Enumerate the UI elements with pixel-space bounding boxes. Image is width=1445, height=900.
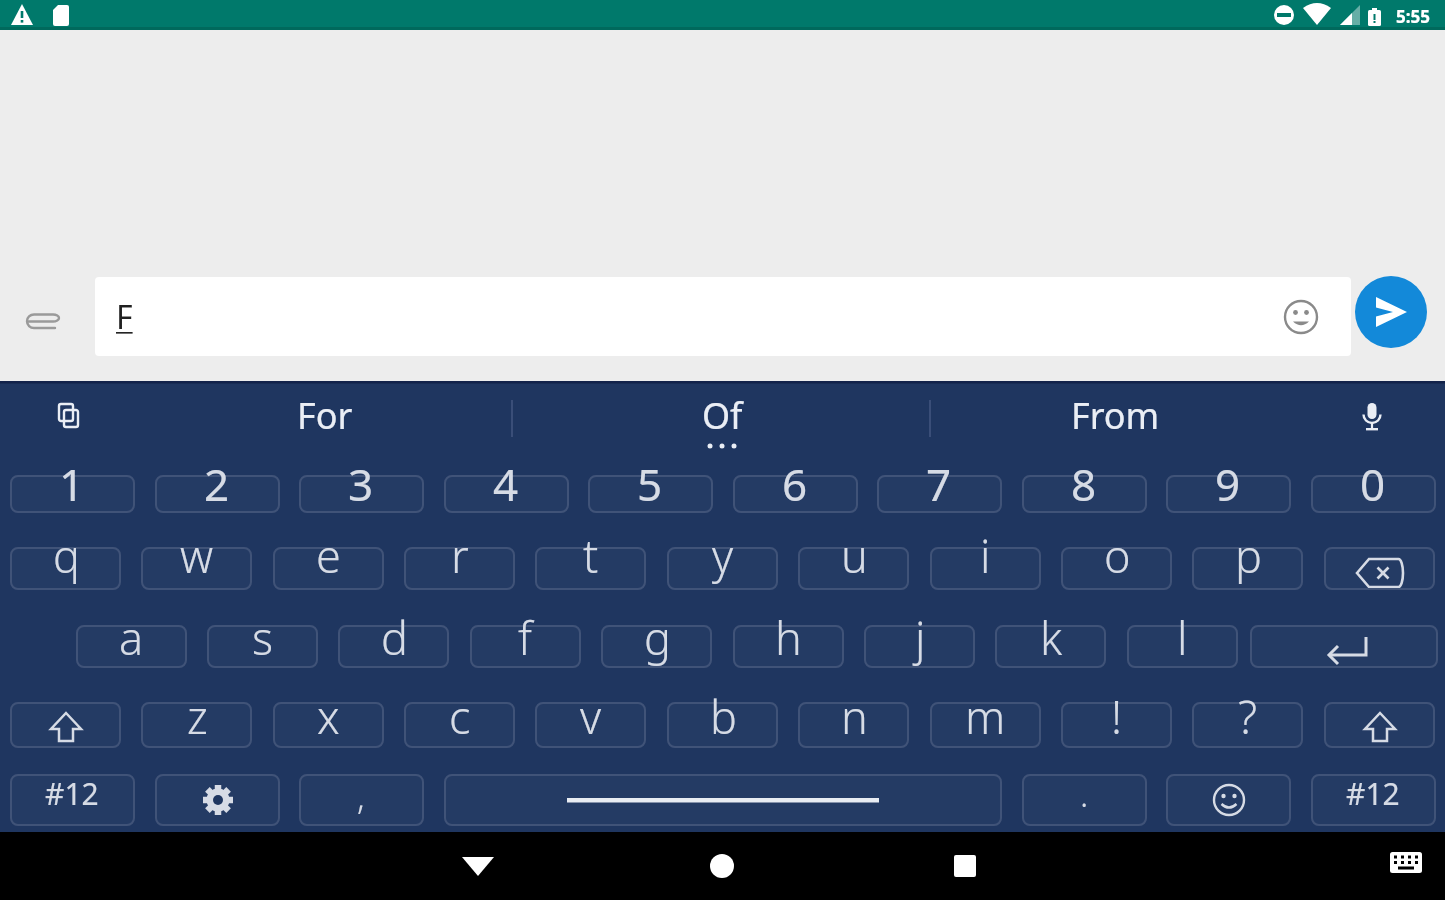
staticText: h	[775, 607, 802, 668]
button[interactable]	[798, 702, 909, 748]
staticText: ?	[1238, 686, 1258, 747]
staticText: For	[297, 391, 353, 440]
button[interactable]	[1192, 702, 1303, 748]
button[interactable]: F	[95, 277, 1351, 356]
button[interactable]	[1022, 774, 1147, 826]
button[interactable]	[733, 625, 844, 668]
staticText: #12	[1346, 773, 1400, 814]
button[interactable]	[1324, 547, 1435, 590]
button[interactable]	[995, 625, 1106, 668]
staticText: g	[644, 607, 671, 668]
staticText: u	[841, 525, 868, 586]
staticText: r	[451, 525, 469, 586]
staticText: 0	[1360, 454, 1386, 514]
button[interactable]: For	[130, 383, 520, 447]
button[interactable]	[1378, 834, 1434, 890]
staticText: From	[1071, 391, 1160, 440]
button[interactable]	[1022, 475, 1147, 513]
button[interactable]	[155, 475, 280, 513]
button[interactable]	[1342, 388, 1402, 448]
staticText: 5	[637, 454, 663, 514]
button[interactable]	[444, 475, 569, 513]
staticText: 9	[1215, 454, 1241, 514]
button[interactable]	[1166, 774, 1291, 826]
button[interactable]	[1355, 276, 1427, 348]
staticText: y	[712, 525, 734, 586]
staticText: j	[915, 607, 926, 668]
button[interactable]	[1250, 625, 1438, 668]
button[interactable]	[404, 702, 515, 748]
button[interactable]	[1061, 702, 1172, 748]
staticText: ,	[357, 773, 365, 819]
staticText: c	[449, 686, 471, 747]
staticText: 7	[926, 454, 952, 514]
button[interactable]	[535, 702, 646, 748]
staticText: 2	[204, 454, 230, 514]
button[interactable]	[930, 702, 1041, 748]
button[interactable]	[930, 547, 1041, 590]
button[interactable]	[667, 702, 778, 748]
button[interactable]	[207, 625, 318, 668]
staticText: t	[583, 525, 599, 586]
button[interactable]	[273, 702, 384, 748]
staticText: 8	[1071, 454, 1097, 514]
staticText: w	[180, 525, 214, 586]
button[interactable]	[1166, 475, 1291, 513]
button[interactable]	[864, 625, 975, 668]
staticText: p	[1235, 525, 1262, 586]
button[interactable]	[10, 702, 121, 748]
staticText: z	[187, 686, 208, 747]
button[interactable]	[933, 834, 997, 898]
button[interactable]	[446, 834, 510, 898]
button[interactable]	[338, 625, 449, 668]
button[interactable]	[667, 547, 778, 590]
button[interactable]	[1127, 625, 1238, 668]
button[interactable]	[76, 625, 187, 668]
button[interactable]	[40, 388, 100, 448]
button[interactable]	[141, 702, 252, 748]
button[interactable]	[588, 475, 713, 513]
button[interactable]	[10, 774, 135, 826]
button[interactable]	[877, 475, 1002, 513]
button[interactable]	[299, 475, 424, 513]
button[interactable]	[1311, 475, 1436, 513]
staticText: 1	[59, 454, 85, 514]
staticText: q	[53, 525, 80, 586]
button[interactable]: Of	[527, 383, 917, 447]
staticText: F	[116, 295, 133, 339]
staticText: 5:55	[1396, 5, 1430, 28]
button[interactable]	[798, 547, 909, 590]
button[interactable]	[21, 294, 69, 342]
staticText: 6	[782, 454, 808, 514]
button[interactable]	[141, 547, 252, 590]
staticText: s	[252, 607, 274, 668]
button[interactable]	[444, 774, 1002, 826]
button[interactable]	[155, 774, 280, 826]
staticText: n	[841, 686, 868, 747]
staticText: i	[980, 525, 991, 586]
staticText: d	[381, 607, 408, 668]
button[interactable]	[601, 625, 712, 668]
staticText: a	[119, 607, 144, 668]
staticText: m	[965, 686, 1006, 747]
button[interactable]	[470, 625, 581, 668]
button[interactable]	[1279, 295, 1323, 339]
button[interactable]: From	[920, 383, 1310, 447]
staticText: l	[1177, 607, 1188, 668]
staticText: .	[1080, 771, 1089, 817]
button[interactable]	[10, 475, 135, 513]
button[interactable]	[10, 547, 121, 590]
button[interactable]	[273, 547, 384, 590]
button[interactable]	[404, 547, 515, 590]
button[interactable]	[299, 774, 424, 826]
button[interactable]	[1061, 547, 1172, 590]
button[interactable]	[690, 834, 754, 898]
button[interactable]	[733, 475, 858, 513]
button[interactable]	[1311, 774, 1436, 826]
button[interactable]	[1192, 547, 1303, 590]
button[interactable]	[1324, 702, 1435, 748]
staticText: x	[317, 686, 340, 747]
staticText: e	[316, 525, 341, 586]
button[interactable]	[535, 547, 646, 590]
staticText: 3	[348, 454, 374, 514]
